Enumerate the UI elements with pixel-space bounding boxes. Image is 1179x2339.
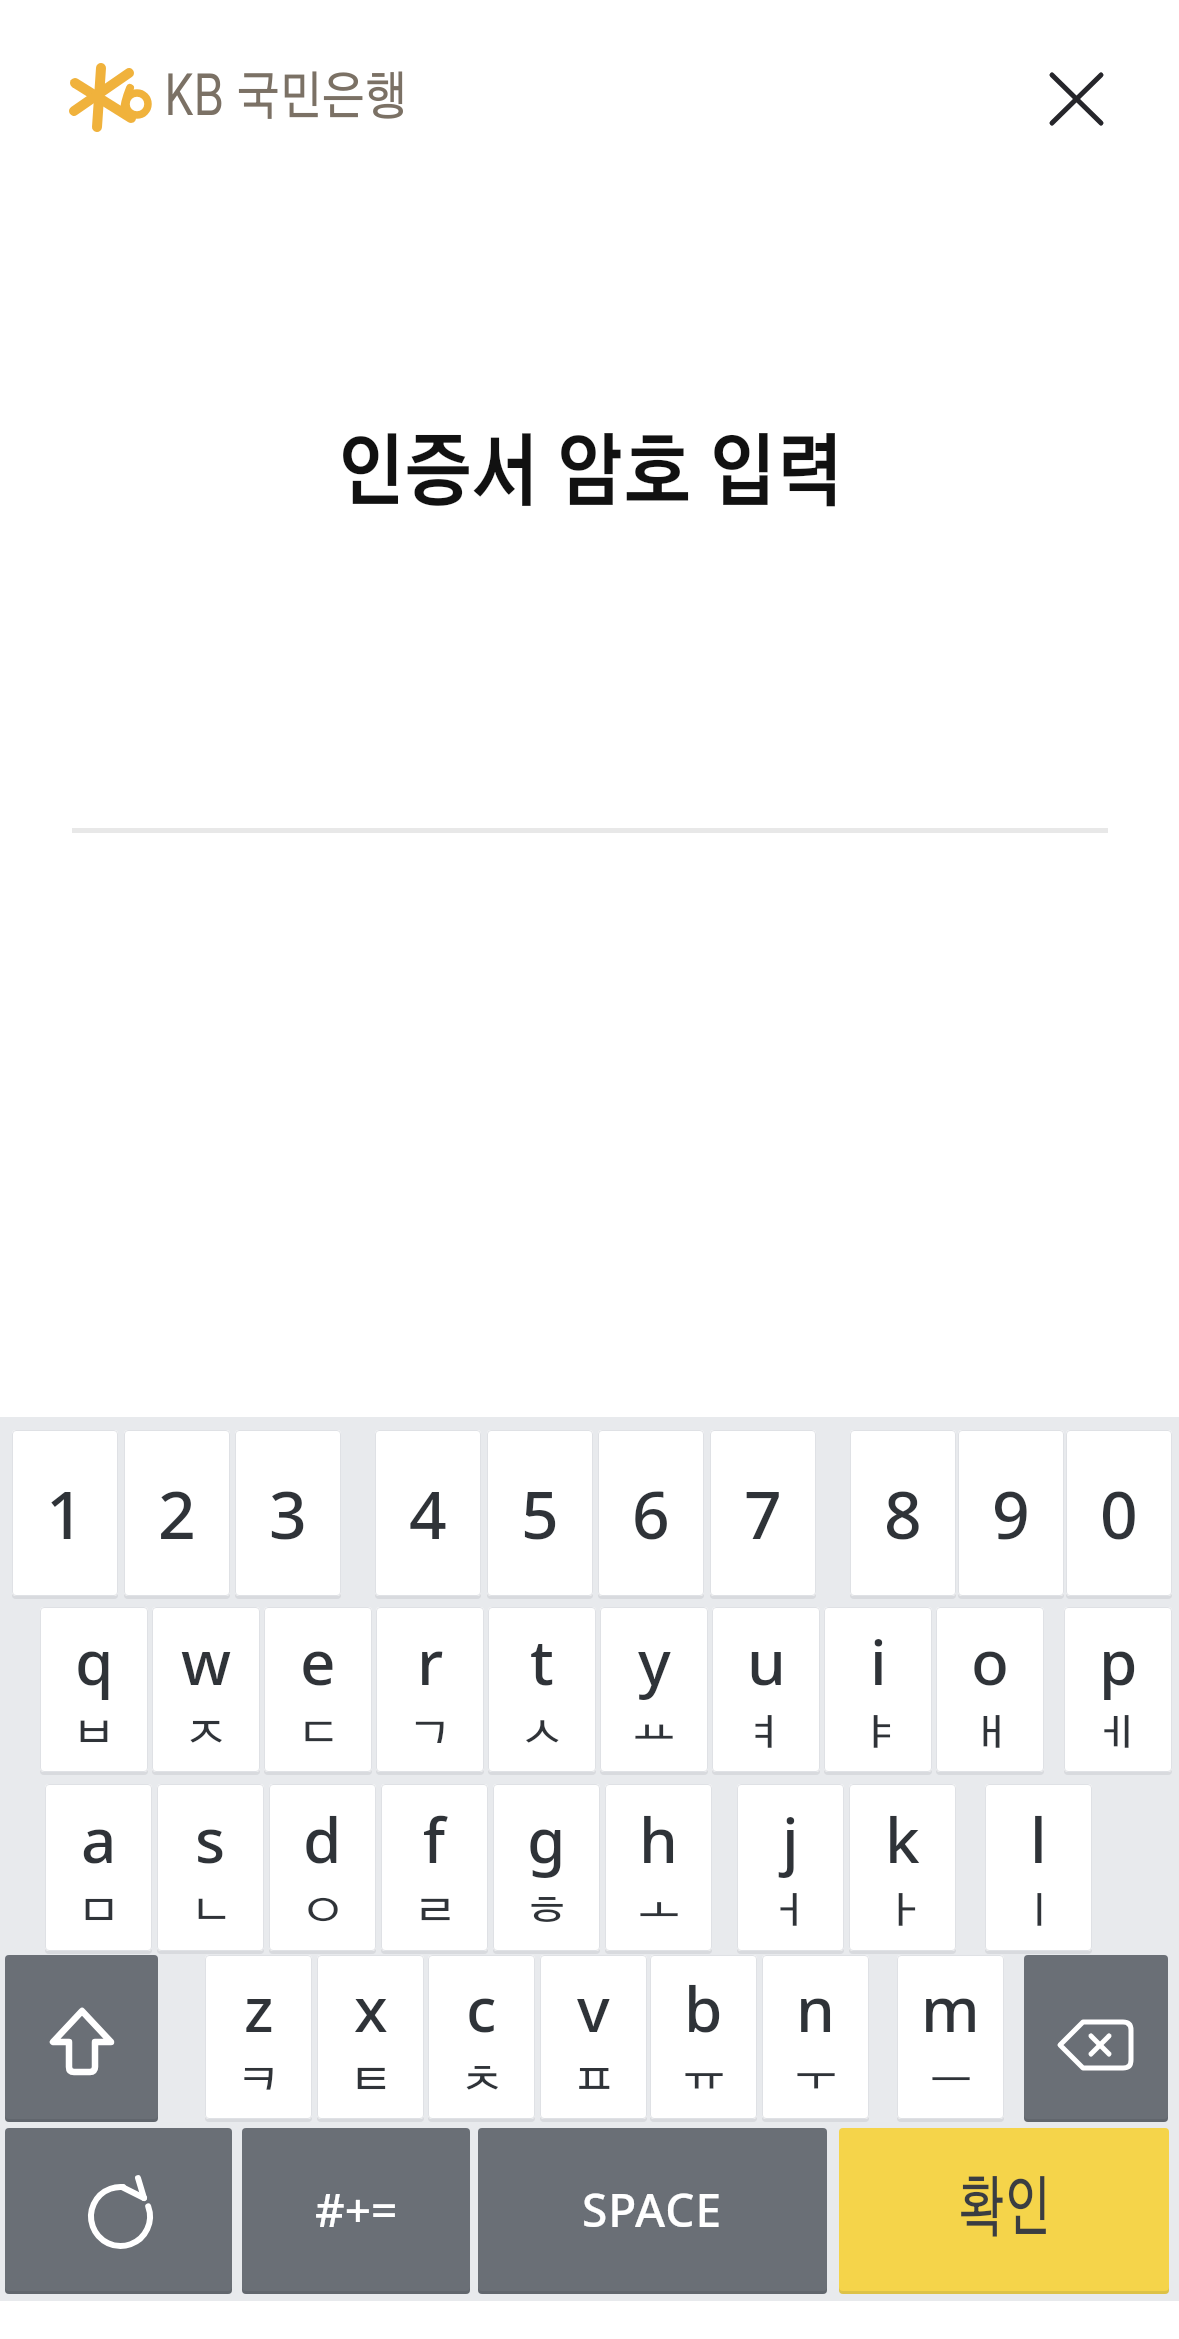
staticText: s <box>195 1797 226 1881</box>
staticText: 0 <box>1100 1468 1138 1558</box>
staticText: i <box>870 1619 887 1703</box>
button[interactable]: 확인 <box>839 2128 1169 2291</box>
button[interactable]: 3 <box>235 1430 341 1596</box>
button[interactable]: n <box>762 1955 869 2119</box>
staticText: ㄱ <box>408 1716 452 1752</box>
button[interactable]: 5 <box>487 1430 593 1596</box>
staticText: 인증서 암호 입력 <box>337 437 843 515</box>
staticText: p <box>1099 1619 1138 1703</box>
staticText: 7 <box>744 1468 782 1558</box>
staticText: b <box>684 1966 723 2050</box>
staticText: 확인 <box>958 2177 1051 2243</box>
staticText: #+= <box>315 2178 398 2241</box>
button[interactable]: o <box>936 1607 1044 1772</box>
staticText: ㅗ <box>637 1894 681 1930</box>
button[interactable]: 2 <box>124 1430 230 1596</box>
button[interactable]: e <box>264 1607 372 1772</box>
staticText: c <box>466 1966 497 2050</box>
staticText: ㅇ <box>301 1894 345 1930</box>
staticText: m <box>921 1966 980 2050</box>
staticText: n <box>796 1966 835 2050</box>
staticText: ㅂ <box>72 1716 116 1752</box>
staticText: k <box>885 1797 920 1881</box>
button[interactable]: z <box>205 1955 312 2119</box>
button[interactable]: 4 <box>375 1430 481 1596</box>
button[interactable]: g <box>493 1784 600 1951</box>
button[interactable]: 0 <box>1066 1430 1172 1596</box>
staticText: x <box>354 1966 388 2050</box>
staticText: ㅏ <box>881 1894 925 1930</box>
staticText: ㅈ <box>184 1716 228 1752</box>
staticText: w <box>181 1619 232 1703</box>
button[interactable]: 8 <box>850 1430 956 1596</box>
staticText: ㄴ <box>189 1894 233 1930</box>
staticText: r <box>417 1619 444 1703</box>
button[interactable]: SPACE <box>478 2128 827 2291</box>
button[interactable]: l <box>985 1784 1092 1951</box>
staticText: ㅐ <box>968 1716 1012 1752</box>
button[interactable] <box>1032 55 1122 145</box>
staticText: ㅛ <box>632 1716 676 1752</box>
button[interactable]: 1 <box>12 1430 118 1596</box>
button[interactable]: s <box>157 1784 264 1951</box>
button[interactable]: c <box>428 1955 535 2119</box>
staticText: z <box>244 1966 274 2050</box>
button[interactable]: #+= <box>242 2128 470 2291</box>
staticText: 1 <box>46 1468 84 1558</box>
button[interactable]: m <box>897 1955 1004 2119</box>
button[interactable]: y <box>600 1607 708 1772</box>
staticText: o <box>971 1619 1009 1703</box>
staticText: ㅅ <box>520 1716 564 1752</box>
button[interactable]: b <box>650 1955 757 2119</box>
button[interactable]: x <box>317 1955 424 2119</box>
button[interactable] <box>5 2128 232 2291</box>
button[interactable]: p <box>1064 1607 1172 1772</box>
button[interactable]: t <box>488 1607 596 1772</box>
button[interactable] <box>1024 1955 1168 2119</box>
button[interactable]: k <box>849 1784 956 1951</box>
staticText: j <box>782 1797 799 1881</box>
staticText: SPACE <box>582 2178 723 2241</box>
staticText: 2 <box>158 1468 196 1558</box>
button[interactable]: j <box>737 1784 844 1951</box>
button[interactable]: d <box>269 1784 376 1951</box>
staticText: ㅋ <box>237 2063 281 2099</box>
button[interactable]: 6 <box>598 1430 704 1596</box>
button[interactable] <box>5 1955 158 2119</box>
button[interactable]: r <box>376 1607 484 1772</box>
staticText: 5 <box>521 1468 559 1558</box>
staticText: ㅌ <box>349 2063 393 2099</box>
staticText: l <box>1030 1797 1047 1881</box>
staticText: a <box>81 1797 117 1881</box>
staticText: ㅎ <box>525 1894 569 1930</box>
staticText: ㅔ <box>1096 1716 1140 1752</box>
staticText: KB <box>164 70 224 126</box>
staticText: ㅕ <box>744 1716 788 1752</box>
button[interactable]: v <box>540 1955 647 2119</box>
staticText: d <box>303 1797 342 1881</box>
staticText: 4 <box>409 1468 447 1558</box>
staticText: ㅜ <box>794 2063 838 2099</box>
staticText: ㅁ <box>77 1894 121 1930</box>
staticText: 9 <box>992 1468 1030 1558</box>
button[interactable]: f <box>381 1784 488 1951</box>
button[interactable]: a <box>45 1784 152 1951</box>
staticText: q <box>75 1619 114 1703</box>
button[interactable]: u <box>712 1607 820 1772</box>
button[interactable]: 7 <box>710 1430 816 1596</box>
staticText: ㅑ <box>856 1716 900 1752</box>
staticText: ㅍ <box>572 2063 616 2099</box>
staticText: 3 <box>269 1468 307 1558</box>
staticText: y <box>638 1619 671 1703</box>
staticText: ㄹ <box>413 1894 457 1930</box>
staticText: v <box>577 1966 610 2050</box>
button[interactable]: i <box>824 1607 932 1772</box>
staticText: ㅣ <box>1017 1894 1061 1930</box>
staticText: 8 <box>884 1468 922 1558</box>
button[interactable]: h <box>605 1784 712 1951</box>
staticText: ㅡ <box>929 2063 973 2099</box>
button[interactable]: w <box>152 1607 260 1772</box>
button[interactable]: q <box>40 1607 148 1772</box>
button[interactable]: 9 <box>958 1430 1064 1596</box>
staticText: ㅓ <box>769 1894 813 1930</box>
